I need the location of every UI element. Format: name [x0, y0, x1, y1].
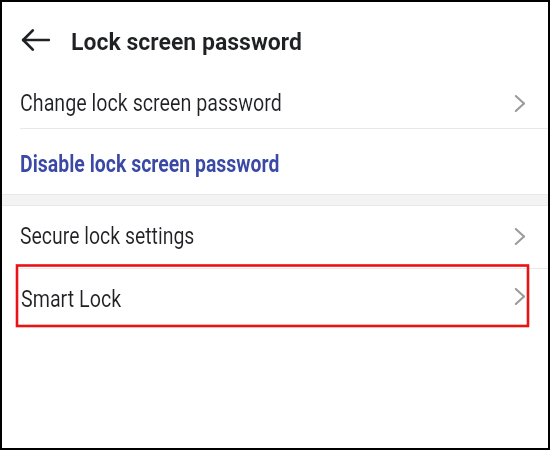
button[interactable]: Change lock screen password — [2, 76, 548, 130]
button[interactable]: Disable lock screen password — [2, 129, 548, 194]
staticText: Lock screen password — [71, 29, 302, 56]
staticText: Change lock screen password — [20, 90, 282, 117]
staticText: Secure lock settings — [20, 223, 195, 250]
button[interactable] — [14, 18, 58, 62]
button[interactable]: Secure lock settings — [2, 206, 548, 267]
staticText: Disable lock screen password — [20, 151, 280, 178]
button[interactable]: Smart Lock — [2, 267, 548, 326]
staticText: Smart Lock — [21, 286, 122, 313]
